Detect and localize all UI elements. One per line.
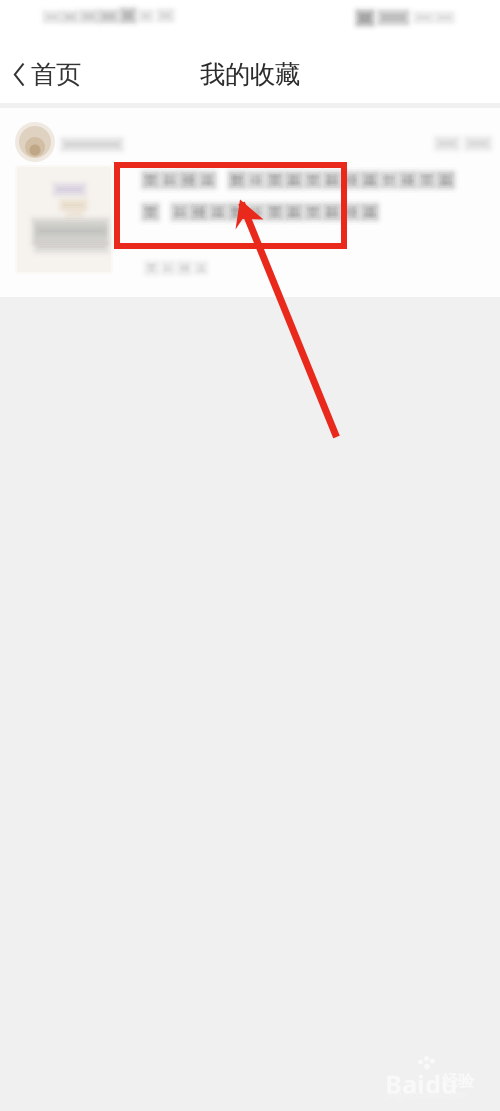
staticText: jingyan.baidu.com xyxy=(386,1088,468,1100)
staticText: Baidu xyxy=(385,1067,457,1101)
staticText: 经验 xyxy=(442,1071,474,1091)
staticText: 我的收藏 xyxy=(200,59,300,90)
button[interactable] xyxy=(0,0,500,1111)
staticText: 首页 xyxy=(31,59,81,90)
button[interactable]: 首页 xyxy=(0,48,97,101)
